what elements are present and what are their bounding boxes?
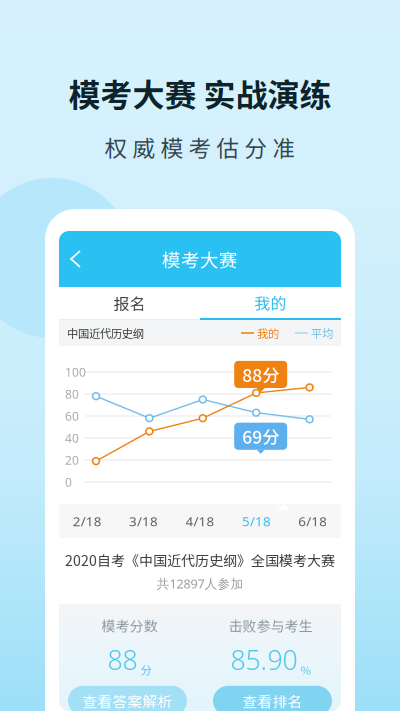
staticText: 击败参与考生 <box>228 615 312 635</box>
staticText: 6/18 <box>298 512 327 530</box>
staticText: 85.90 <box>230 641 297 678</box>
staticText: 查看排名 <box>242 690 302 711</box>
staticText: 平均 <box>308 325 333 341</box>
staticText: 我的 <box>254 291 286 314</box>
staticText: 共12897人参加 <box>156 575 243 592</box>
staticText: 88 <box>107 641 137 678</box>
staticText: 2020自考《中国近代历史纲》全国模考大赛 <box>65 550 335 570</box>
button[interactable]: 2/18 <box>59 504 115 538</box>
button[interactable]: 我的 <box>200 287 341 320</box>
staticText: 80 <box>65 386 79 402</box>
staticText: 60 <box>65 408 79 424</box>
staticText: 2/18 <box>73 512 102 530</box>
button[interactable]: 6/18 <box>285 504 341 538</box>
button[interactable]: 查看答案解析 <box>68 686 187 711</box>
staticText: 分 <box>140 661 151 678</box>
staticText: 3/18 <box>129 512 158 530</box>
button[interactable]: 报名 <box>59 287 200 320</box>
staticText: 100 <box>65 364 86 380</box>
staticText: 权 威 模 考 估 分 准 <box>104 130 295 163</box>
staticText: 查看答案解析 <box>82 690 172 711</box>
staticText: 69分 <box>242 424 279 449</box>
staticText: 中国近代历史纲 <box>67 325 144 341</box>
staticText: % <box>300 661 310 678</box>
staticText: 40 <box>65 430 79 446</box>
staticText: 0 <box>65 474 72 490</box>
staticText: 模考分数 <box>101 615 157 635</box>
staticText: 20 <box>65 452 79 468</box>
button[interactable]: 查看排名 <box>213 686 332 711</box>
staticText: 88分 <box>242 362 279 387</box>
staticText: 4/18 <box>185 512 214 530</box>
staticText: 模考大赛 实战演练 <box>68 70 331 116</box>
staticText: 模考大赛 <box>162 245 238 272</box>
staticText: 5/18 <box>242 512 271 530</box>
button[interactable]: 返回 <box>59 237 92 281</box>
staticText: 我的 <box>254 325 279 341</box>
staticText: 报名 <box>113 291 145 315</box>
button[interactable]: 4/18 <box>172 504 228 538</box>
button[interactable]: 5/18 <box>228 504 285 538</box>
button[interactable]: 3/18 <box>115 504 172 538</box>
